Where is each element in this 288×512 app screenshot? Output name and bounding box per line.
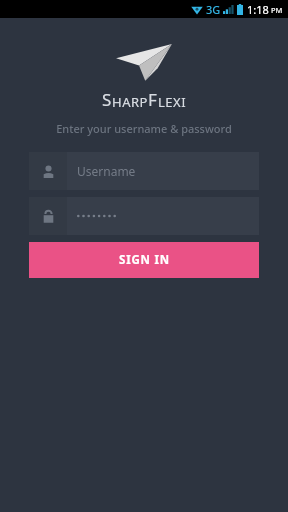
button[interactable] (29, 197, 259, 235)
staticText: 3G (206, 2, 221, 17)
staticText: PM (271, 5, 283, 15)
staticText: LEXI (158, 93, 187, 111)
staticText: Username (77, 163, 136, 179)
staticText: SIGN IN (119, 252, 170, 268)
staticText: HARP (112, 93, 148, 111)
staticText: S (102, 88, 112, 111)
staticText: 1:18 (247, 2, 269, 17)
button[interactable]: SIGN IN (29, 242, 259, 278)
staticText: Enter your username & password (56, 121, 232, 136)
staticText: F (148, 88, 158, 111)
button[interactable]: Username (29, 152, 259, 190)
